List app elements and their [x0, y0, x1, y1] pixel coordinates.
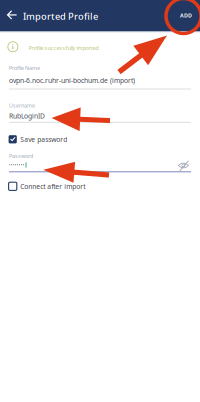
- staticText: Imported Profile: [23, 10, 98, 22]
- staticText: Username: [9, 102, 35, 109]
- button[interactable]: Connect after import: [9, 182, 191, 191]
- button[interactable]: Back: [6, 9, 17, 21]
- staticText: ADD: [180, 12, 192, 19]
- staticText: Profile successfully imported: [28, 44, 98, 52]
- button[interactable]: ADD: [180, 12, 192, 19]
- staticText: Connect after import: [20, 182, 85, 191]
- staticText: Profile Name: [9, 64, 40, 72]
- button[interactable]: Show password: [178, 160, 189, 171]
- staticText: Password: [9, 152, 33, 160]
- staticText: RubLoginID: [9, 111, 45, 120]
- button[interactable]: Save password: [9, 135, 191, 144]
- staticText: ovpn-6.noc.ruhr-uni-bochum.de (import): [9, 76, 135, 85]
- staticText: Save password: [20, 135, 67, 144]
